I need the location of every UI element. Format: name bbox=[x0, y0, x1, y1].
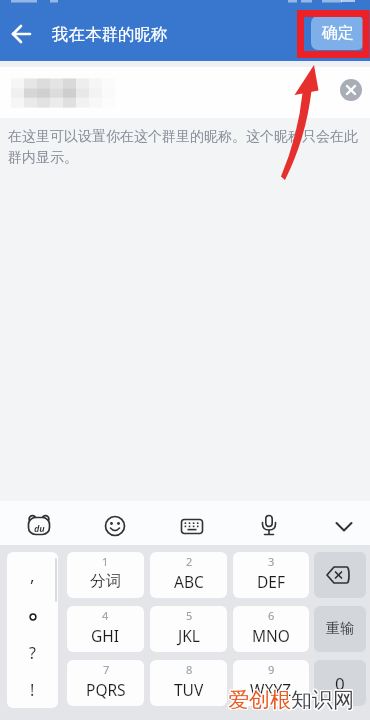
button[interactable]: , bbox=[7, 552, 58, 708]
staticText: 爱创根知识网 bbox=[228, 686, 354, 712]
button[interactable]: 重输 bbox=[314, 606, 366, 652]
button[interactable]: 1 bbox=[67, 552, 144, 598]
staticText: , bbox=[30, 564, 35, 587]
staticText: ? bbox=[29, 642, 36, 664]
staticText: ABC bbox=[174, 571, 204, 592]
staticText: 7 bbox=[103, 662, 110, 677]
staticText: ! bbox=[30, 679, 35, 701]
staticText: PQRS bbox=[86, 679, 126, 700]
button[interactable]: 4 bbox=[67, 606, 144, 652]
button[interactable]: 2 bbox=[150, 552, 227, 598]
button[interactable] bbox=[314, 552, 366, 598]
staticText: 重输 bbox=[326, 620, 354, 638]
button[interactable]: 5 bbox=[150, 606, 227, 652]
button[interactable]: du bbox=[25, 512, 53, 540]
staticText: 9 bbox=[268, 662, 275, 677]
staticText: 知识网 bbox=[291, 687, 354, 713]
button[interactable] bbox=[331, 513, 357, 539]
button[interactable] bbox=[178, 512, 206, 540]
staticText: DEF bbox=[257, 571, 285, 592]
staticText: 2 bbox=[186, 554, 193, 569]
staticText: JKL bbox=[178, 625, 200, 646]
staticText: 8 bbox=[186, 662, 193, 677]
staticText: 爱创根知识网 bbox=[227, 688, 353, 714]
staticText: 爱创根知识网 bbox=[229, 688, 355, 714]
staticText: 分词 bbox=[90, 571, 121, 591]
staticText: 5 bbox=[186, 608, 193, 623]
staticText: 爱创根知识网 bbox=[229, 687, 355, 713]
staticText: WXYZ bbox=[250, 679, 292, 700]
staticText: 我在本群的昵称 bbox=[52, 24, 168, 45]
staticText: 爱创根 bbox=[228, 687, 291, 713]
button[interactable] bbox=[340, 79, 362, 101]
staticText: 确定 bbox=[322, 23, 354, 43]
staticText: GHI bbox=[91, 625, 120, 646]
staticText: 爱创根知识网 bbox=[227, 687, 353, 713]
staticText: TUV bbox=[174, 679, 204, 700]
button[interactable] bbox=[255, 511, 283, 539]
button[interactable]: 确定 bbox=[311, 16, 364, 50]
button[interactable] bbox=[101, 512, 129, 540]
button[interactable] bbox=[6, 20, 36, 48]
staticText: 4 bbox=[102, 608, 109, 623]
staticText: du bbox=[34, 522, 45, 534]
button[interactable]: 8 bbox=[150, 660, 227, 706]
staticText: 爱创根知识网 bbox=[227, 686, 353, 712]
button[interactable]: 7 bbox=[67, 660, 144, 706]
staticText: 0 bbox=[335, 672, 345, 695]
staticText: 6 bbox=[268, 608, 275, 623]
staticText: 1 bbox=[102, 554, 109, 569]
staticText: 爱创根知识网 bbox=[229, 686, 355, 712]
staticText: 在这里可以设置你在这个群里的昵称。这个昵称只会在此 群内显示。 bbox=[8, 128, 358, 166]
button[interactable]: 0 bbox=[314, 660, 366, 706]
staticText: 3 bbox=[268, 554, 275, 569]
staticText: 爱创根知识网 bbox=[228, 688, 354, 714]
button[interactable]: 9 bbox=[233, 660, 309, 706]
staticText: MNO bbox=[252, 625, 290, 646]
button[interactable]: 6 bbox=[233, 606, 309, 652]
button[interactable] bbox=[0, 67, 370, 118]
button[interactable]: 3 bbox=[233, 552, 309, 598]
